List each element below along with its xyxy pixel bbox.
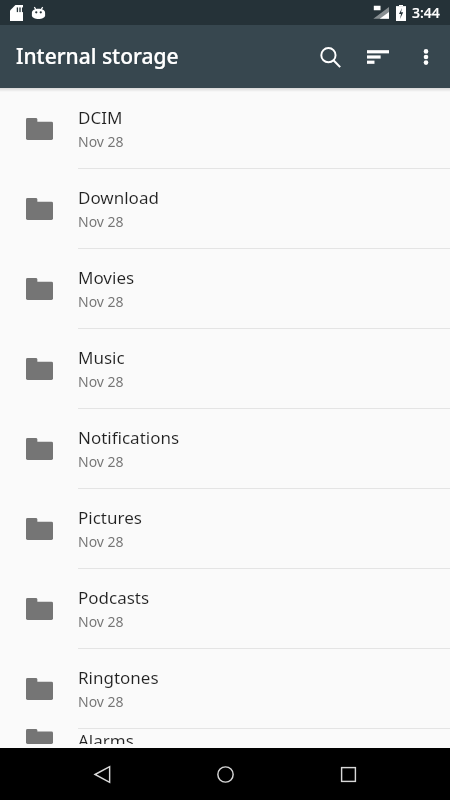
staticText: DCIM	[78, 106, 123, 129]
staticText: Podcasts	[78, 586, 150, 609]
staticText: Notifications	[78, 426, 180, 449]
button[interactable]: Notifications	[0, 408, 450, 488]
staticText: Nov 28	[78, 692, 124, 711]
button[interactable]: Search	[306, 33, 354, 81]
button[interactable]: Alarms	[0, 728, 450, 744]
button[interactable]: Download	[0, 168, 450, 248]
staticText: Alarms	[78, 729, 134, 744]
staticText: Nov 28	[78, 612, 124, 631]
staticText: Nov 28	[78, 452, 124, 471]
button[interactable]: More options	[402, 33, 450, 81]
button[interactable]: Home	[201, 750, 249, 798]
staticText: Nov 28	[78, 532, 124, 551]
button[interactable]: Sort	[354, 33, 402, 81]
staticText: Movies	[78, 266, 135, 289]
button[interactable]: DCIM	[0, 92, 450, 168]
staticText: Music	[78, 346, 125, 369]
staticText: Nov 28	[78, 212, 124, 231]
button[interactable]: Podcasts	[0, 568, 450, 648]
staticText: Pictures	[78, 506, 142, 529]
staticText: Nov 28	[78, 372, 124, 391]
staticText: Nov 28	[78, 292, 124, 311]
staticText: Ringtones	[78, 666, 159, 689]
staticText: 3:44	[412, 3, 440, 22]
button[interactable]: Pictures	[0, 488, 450, 568]
button[interactable]: Music	[0, 328, 450, 408]
button[interactable]: Movies	[0, 248, 450, 328]
button[interactable]: Back	[78, 750, 126, 798]
staticText: Nov 28	[78, 132, 124, 151]
button[interactable]: Recent apps	[324, 750, 372, 798]
button[interactable]: Ringtones	[0, 648, 450, 728]
staticText: Download	[78, 186, 159, 209]
staticText: Internal storage	[16, 42, 179, 71]
